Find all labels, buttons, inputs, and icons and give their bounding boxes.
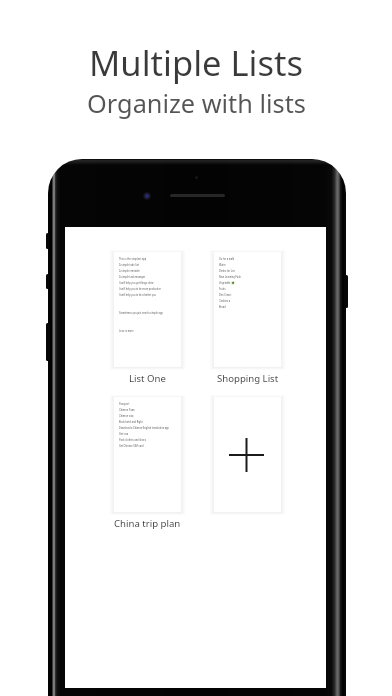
staticText: Sometimes you just need a simple app <box>119 311 163 314</box>
staticText: A simple todo list <box>119 263 139 266</box>
staticText: Download a Chinese-English translation a… <box>119 426 169 429</box>
staticText: A simple task manager <box>119 275 146 278</box>
staticText: Multiple Lists <box>89 39 303 86</box>
staticText: Chinese visa <box>119 414 134 417</box>
staticText: It will help you get things done <box>119 281 154 284</box>
staticText: It will help you to be a better you <box>119 293 156 296</box>
staticText: List One <box>129 372 166 385</box>
staticText: Get visa <box>119 432 129 435</box>
staticText: Pack clothes and shoes <box>119 438 147 441</box>
staticText: Fruits <box>219 287 226 290</box>
staticText: This is the simplest app <box>119 257 147 260</box>
staticText: China trip plan <box>114 517 181 530</box>
staticText: A simple reminder <box>119 269 140 272</box>
staticText: Bread <box>219 305 226 308</box>
staticText: Dim Crew t <box>219 293 232 296</box>
staticText: Shopping List <box>217 372 279 385</box>
staticText: Get Chinese SIM card <box>119 444 144 447</box>
button[interactable]: Add new list <box>214 397 281 512</box>
staticText: Drinks for Leo <box>219 269 235 272</box>
button[interactable]: Go for a walk <box>214 252 281 367</box>
staticText: Chinese Yuan <box>119 408 135 411</box>
button[interactable]: Passport <box>114 397 181 512</box>
staticText: Water <box>219 263 226 266</box>
staticText: Cookies a <box>219 299 231 302</box>
staticText: Book hotel and flight <box>119 420 143 423</box>
staticText: Less is more <box>119 329 134 332</box>
staticText: Vegetable <box>219 281 231 284</box>
staticText: Go for a walk <box>219 257 235 260</box>
staticText: Organize with lists <box>87 86 306 120</box>
staticText: It will help you to be more productive <box>119 287 161 290</box>
staticText: New Learning Push <box>219 275 241 278</box>
button[interactable]: This is the simplest app <box>114 252 181 367</box>
staticText: Passport <box>119 402 130 405</box>
